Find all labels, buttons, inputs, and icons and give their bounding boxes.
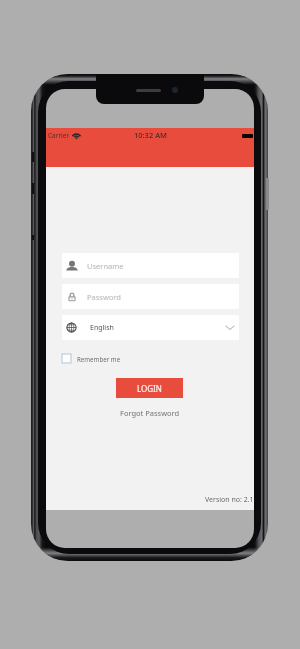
staticText: Carrier [48,131,70,140]
staticText: Username [87,261,124,271]
staticText: Forgot Password [120,408,180,418]
button[interactable]: Forgot Password [120,408,180,418]
button[interactable]: Remember me [62,354,121,363]
button[interactable]: Username [62,253,239,278]
staticText: English [90,323,114,333]
button[interactable]: English [62,315,239,340]
staticText: Password [87,292,121,302]
button[interactable]: LOGIN [116,378,183,398]
staticText: Version no: 2.1 [205,495,254,505]
button[interactable]: Password [62,284,239,309]
staticText: 10:32 AM [134,130,167,140]
staticText: Remember me [77,355,121,363]
staticText: LOGIN [137,383,162,394]
